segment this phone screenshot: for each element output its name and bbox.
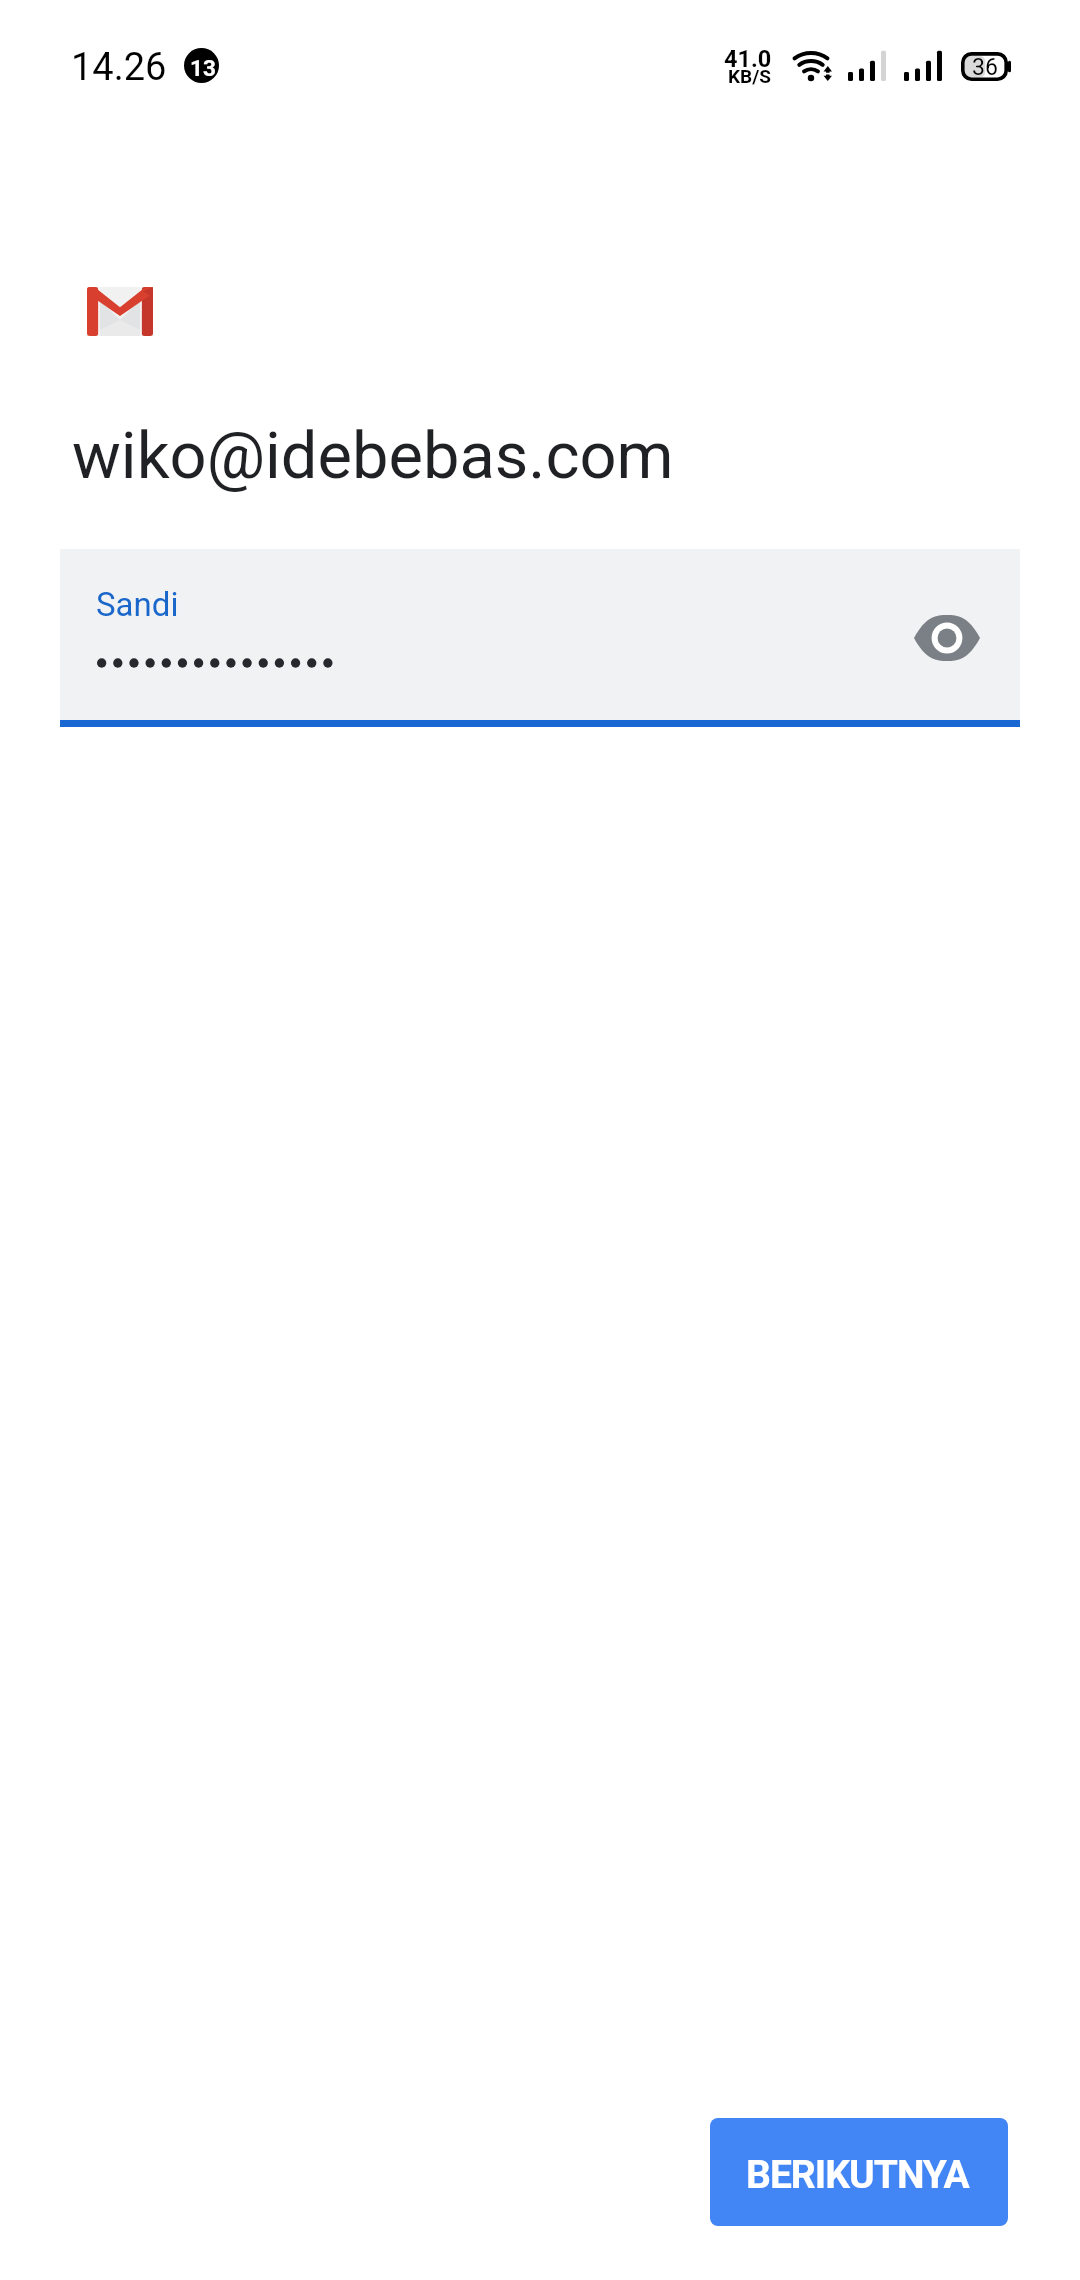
button[interactable]: BERIKUTNYA: [710, 2118, 1008, 2226]
staticText: 14.26: [71, 45, 167, 90]
staticText: wiko@idebebas.com: [72, 418, 674, 494]
button[interactable]: Tampilkan sandi: [907, 598, 987, 678]
staticText: 13: [190, 55, 216, 81]
staticText: Sandi: [96, 585, 179, 624]
staticText: BERIKUTNYA: [746, 2152, 969, 2198]
staticText: 36: [972, 54, 998, 81]
button[interactable]: Sandi: [60, 549, 1020, 720]
staticText: 41.0: [724, 45, 772, 73]
staticText: KB/S: [728, 65, 771, 87]
